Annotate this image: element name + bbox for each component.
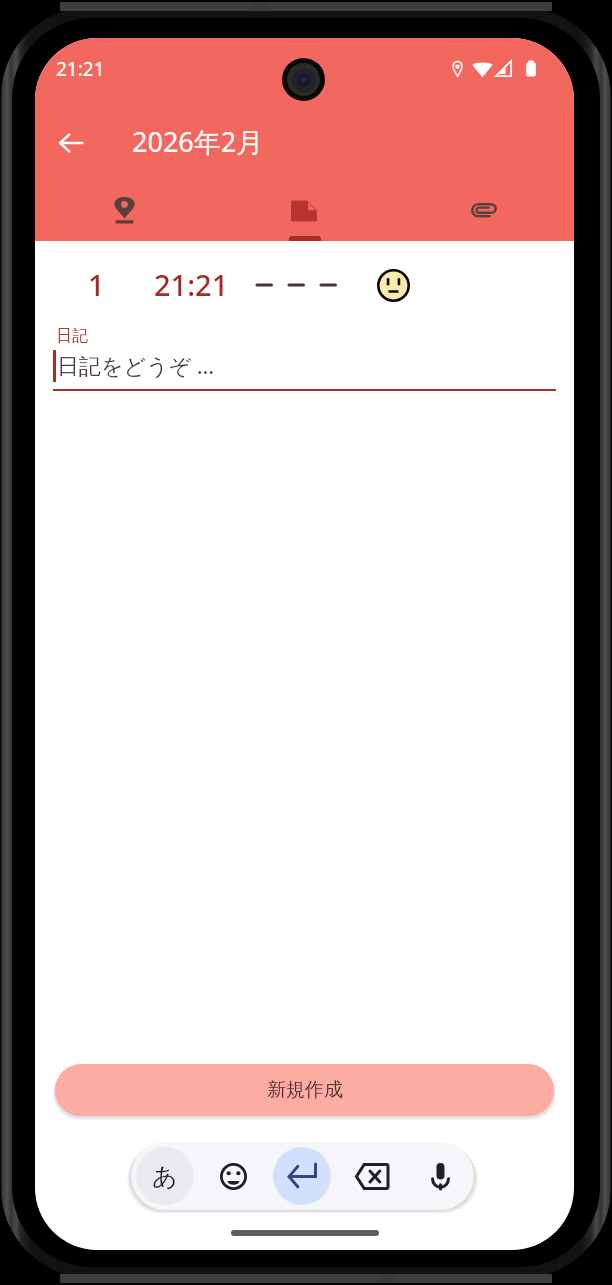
button[interactable]: Location: [35, 180, 214, 241]
button[interactable]: Voice input: [411, 1147, 469, 1205]
staticText: 21:21: [154, 265, 229, 304]
button[interactable]: Enter: [273, 1147, 331, 1205]
button[interactable]: 新規作成: [55, 1064, 554, 1116]
button[interactable]: Attachment: [394, 180, 574, 241]
button[interactable]: Diary: [214, 180, 394, 241]
staticText: 日記をどうぞ …: [57, 350, 215, 380]
staticText: 新規作成: [267, 1078, 343, 1102]
staticText: 日記: [56, 326, 88, 346]
staticText: 1: [88, 265, 105, 304]
button[interactable]: Emoji: [204, 1147, 262, 1205]
staticText: 2026年2月: [132, 123, 264, 160]
button[interactable]: Backspace: [342, 1147, 400, 1205]
staticText: 21:21: [56, 56, 105, 82]
staticText: あ: [152, 1161, 178, 1192]
button[interactable]: Japanese input: [136, 1147, 194, 1205]
button[interactable]: Back: [48, 120, 94, 166]
